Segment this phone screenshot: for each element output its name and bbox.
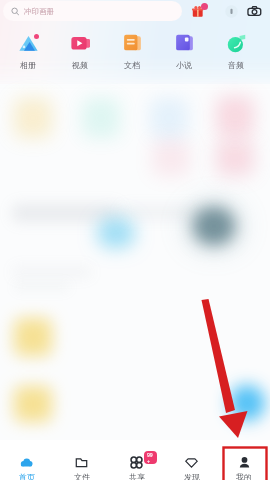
- button[interactable]: 会员: [220, 0, 242, 22]
- button[interactable]: 相册: [2, 22, 54, 70]
- button[interactable]: 冲印画册: [3, 1, 182, 21]
- staticText: 冲印画册: [24, 7, 54, 16]
- staticText: 发现: [184, 472, 200, 480]
- staticText: 99+: [147, 452, 154, 463]
- staticText: 音频: [228, 60, 244, 70]
- staticText: 小说: [176, 60, 192, 70]
- button[interactable]: 活动礼包: [187, 0, 209, 22]
- staticText: 首页: [19, 472, 35, 480]
- button[interactable]: 首页: [0, 440, 54, 480]
- staticText: 文件: [74, 472, 90, 480]
- button[interactable]: 音频: [210, 22, 262, 70]
- button[interactable]: 扫一扫: [243, 0, 265, 22]
- staticText: 视频: [72, 60, 88, 70]
- staticText: 相册: [20, 60, 36, 70]
- button[interactable]: 文件: [54, 440, 109, 480]
- staticText: 我的: [236, 472, 252, 480]
- button[interactable]: 99+: [109, 440, 164, 480]
- button[interactable]: 我的: [219, 440, 269, 480]
- button[interactable]: 视频: [54, 22, 106, 70]
- button[interactable]: 发现: [164, 440, 219, 480]
- staticText: 共享: [129, 472, 145, 480]
- staticText: 文档: [124, 60, 140, 70]
- button[interactable]: 文档: [106, 22, 158, 70]
- button[interactable]: 小说: [158, 22, 210, 70]
